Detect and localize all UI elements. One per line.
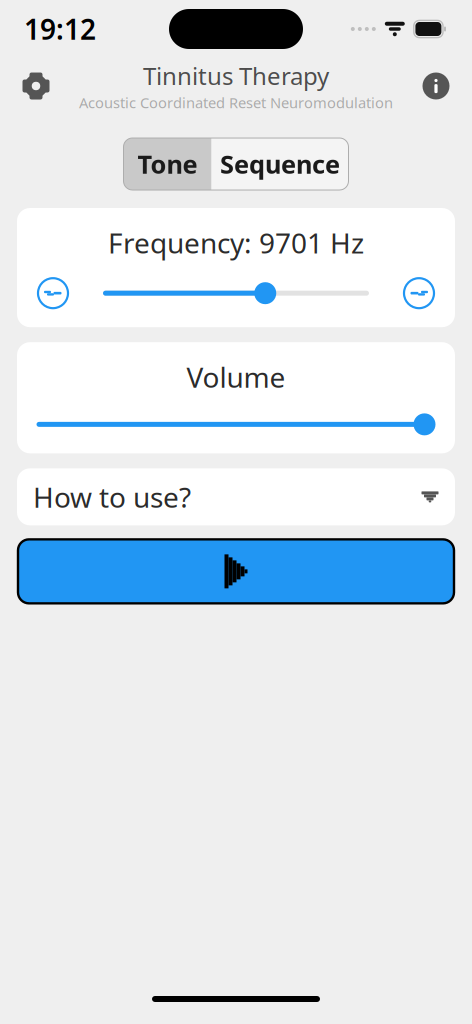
staticText: How to use? bbox=[33, 478, 191, 515]
button[interactable]: Information bbox=[410, 60, 462, 112]
staticText: Tinnitus Therapy bbox=[143, 60, 329, 92]
button[interactable]: Play bbox=[18, 539, 454, 603]
staticText: Sequence bbox=[220, 147, 340, 181]
staticText: 19:12 bbox=[24, 10, 96, 48]
button[interactable]: How to use? bbox=[17, 468, 455, 525]
staticText: Acoustic Coordinated Reset Neuromodulati… bbox=[79, 93, 393, 112]
staticText: Tone bbox=[137, 147, 197, 181]
staticText: Volume bbox=[186, 358, 285, 395]
button[interactable]: Settings bbox=[10, 60, 62, 112]
button[interactable]: Increase frequency bbox=[401, 275, 437, 311]
button[interactable]: Decrease frequency bbox=[35, 275, 71, 311]
button[interactable]: Sequence bbox=[211, 138, 348, 190]
button[interactable]: Tone bbox=[123, 138, 211, 190]
staticText: Frequency: 9701 Hz bbox=[108, 224, 364, 261]
